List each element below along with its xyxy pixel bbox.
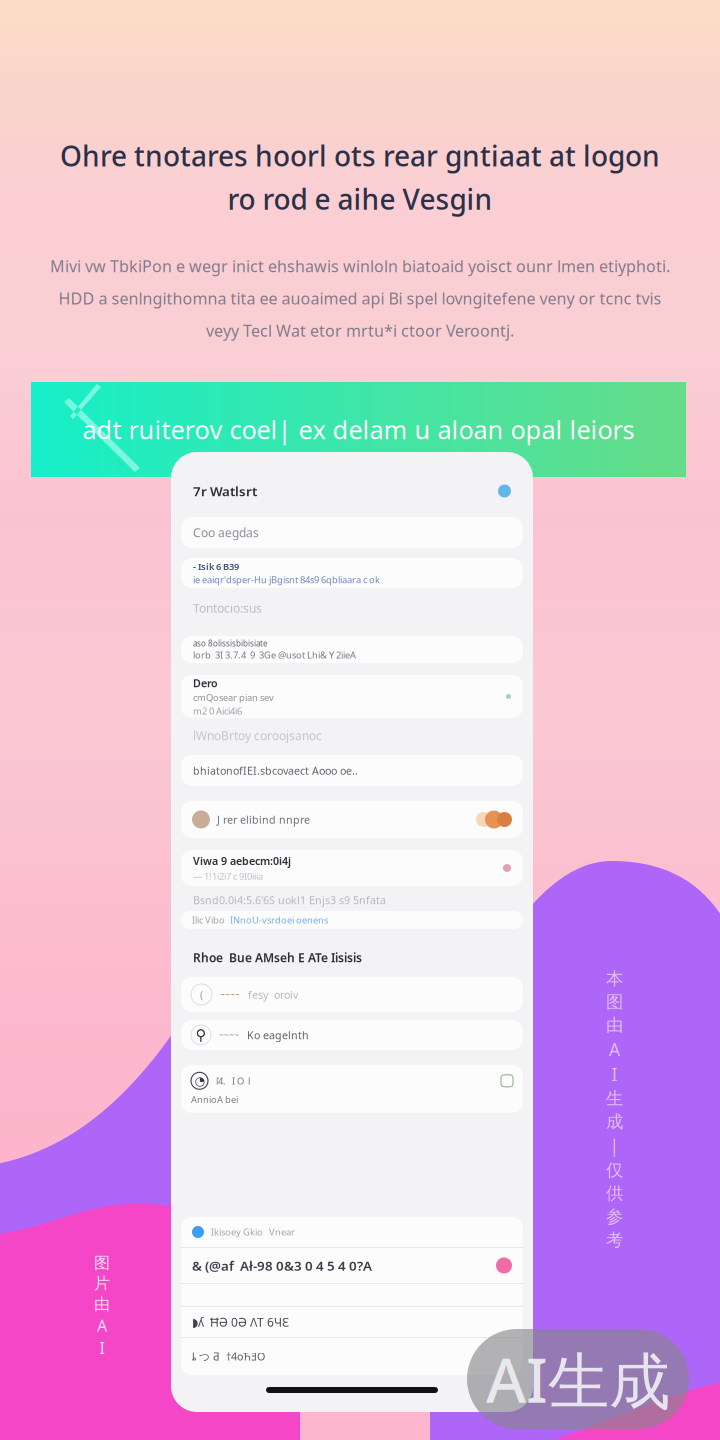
staticText: - Isik 6 B39 (193, 560, 239, 572)
staticText: ȴ つ Ƌ †4oЋƎO (192, 1349, 265, 1364)
staticText: HDD a senlngithomna tita ee auoaimed api… (58, 288, 661, 309)
button[interactable]: 7r Watlsrt (181, 478, 523, 504)
button[interactable]: ( (181, 977, 523, 1012)
staticText: Rhoe Bue AMseh E ATe Iisisis (193, 949, 362, 965)
staticText: cmQosear pian sev (193, 691, 274, 704)
button[interactable]: bhiatonofIEI.sbcovaect Aooo oe.. (181, 755, 523, 786)
staticText: ie eaiqr'dsper-Hu jBgisnt 84s9 6qbliaara… (193, 573, 380, 586)
staticText: Dero (193, 676, 218, 690)
staticText: 成 (606, 1111, 623, 1132)
button[interactable]: Ikisoey Gkio Vnear (181, 1217, 523, 1247)
staticText: Bsnd0.0i4:5.6'6S uokl1 Enjs3 s9 5nfata (193, 893, 386, 907)
staticText: Ikisoey Gkio Vnear (211, 1226, 295, 1238)
staticText: ro rod e aihe Vesgin (227, 180, 492, 217)
staticText: lWnoBrtoy coroojsanoc (193, 727, 322, 743)
staticText: veyy Tecl Wat etor mrtu*i ctoor Veroontj… (206, 320, 514, 341)
staticText: lorb 3I 3.7.4 9 3Ge @usot Lhi& Y 2iieA (193, 649, 356, 661)
staticText: Viwa 9 aebecm:0i4j (193, 854, 291, 868)
button[interactable]: ◔ (181, 1065, 523, 1113)
staticText: Ohre tnotares hoorl ots rear gntiaat at … (60, 137, 660, 174)
staticText: ~~~~ (219, 1030, 239, 1040)
button[interactable]: ◗ʎ ĦƏ 0Ə ΛT 6ЧƐ (181, 1307, 523, 1337)
staticText: ( (200, 987, 203, 1002)
staticText: 考 (606, 1229, 623, 1251)
button[interactable]: J rer elibind nnpre (181, 801, 523, 838)
staticText: adt ruiterov coel| ex delam u aloan opal… (82, 413, 634, 446)
staticText: ◗ʎ ĦƏ 0Ə ΛT 6ЧƐ (192, 1314, 289, 1330)
staticText: J rer elibind nnpre (217, 812, 310, 827)
staticText: Coo aegdas (193, 524, 259, 540)
staticText: bhiatonofIEI.sbcovaect Aooo oe.. (193, 763, 358, 778)
staticText: 生 (606, 1088, 623, 1109)
staticText: m2 0 Aici4i6 (193, 705, 242, 717)
staticText: ľ4. I O l (216, 1075, 250, 1087)
staticText: I (611, 1063, 617, 1086)
staticText: aso 8olissisbibisiate (193, 638, 268, 649)
staticText: A (609, 1038, 620, 1061)
staticText: ⚲ (195, 1027, 206, 1043)
staticText: 参 (606, 1206, 623, 1227)
button[interactable]: ȴ つ Ƌ †4oЋƎO (181, 1338, 523, 1375)
button[interactable]: Dero (181, 675, 523, 718)
button[interactable]: & (@af Ał-98 0&3 0 4 5 4 0?A (181, 1248, 523, 1283)
staticText: AI生成 (486, 1338, 670, 1420)
button[interactable]: Ilic Vibo (181, 911, 523, 929)
button[interactable]: ⚲ (181, 1020, 523, 1050)
staticText: 仅 (606, 1159, 623, 1181)
button[interactable]: aso 8olissisbibisiate (181, 636, 523, 663)
staticText: 图 (94, 1253, 110, 1273)
staticText: INnoU-vsrdoei oenens (230, 914, 328, 926)
staticText: 本 (606, 968, 623, 989)
button[interactable]: Coo aegdas (181, 517, 523, 548)
staticText: 由 (94, 1294, 110, 1314)
button[interactable]: Viwa 9 aebecm:0i4j (181, 850, 523, 886)
staticText: Tontocio:sus (193, 600, 262, 616)
staticText: AnnioA bei (191, 1093, 238, 1106)
staticText: ◔ (194, 1074, 204, 1088)
staticText: Ilic Vibo (192, 914, 225, 926)
staticText: Ko eagelnth (247, 1028, 309, 1042)
staticText: 供 (606, 1183, 623, 1204)
staticText: I (99, 1337, 104, 1358)
staticText: fesy oroiv (248, 987, 298, 1002)
button[interactable]: - Isik 6 B39 (181, 558, 523, 588)
staticText: Mivi vw TbkiPon e wegr inict ehshawis wi… (50, 255, 670, 277)
staticText: 由 (606, 1015, 623, 1036)
staticText: — 1!1i2i7 c 9I0iiia (193, 870, 263, 882)
staticText: ~~~~ (220, 989, 240, 1000)
staticText: | (609, 1134, 619, 1157)
staticText: 图 (606, 991, 623, 1013)
staticText: A (97, 1315, 107, 1336)
staticText: 7r Watlsrt (193, 482, 257, 500)
staticText: & (@af Ał-98 0&3 0 4 5 4 0?A (192, 1257, 372, 1274)
staticText: 片 (94, 1274, 110, 1293)
